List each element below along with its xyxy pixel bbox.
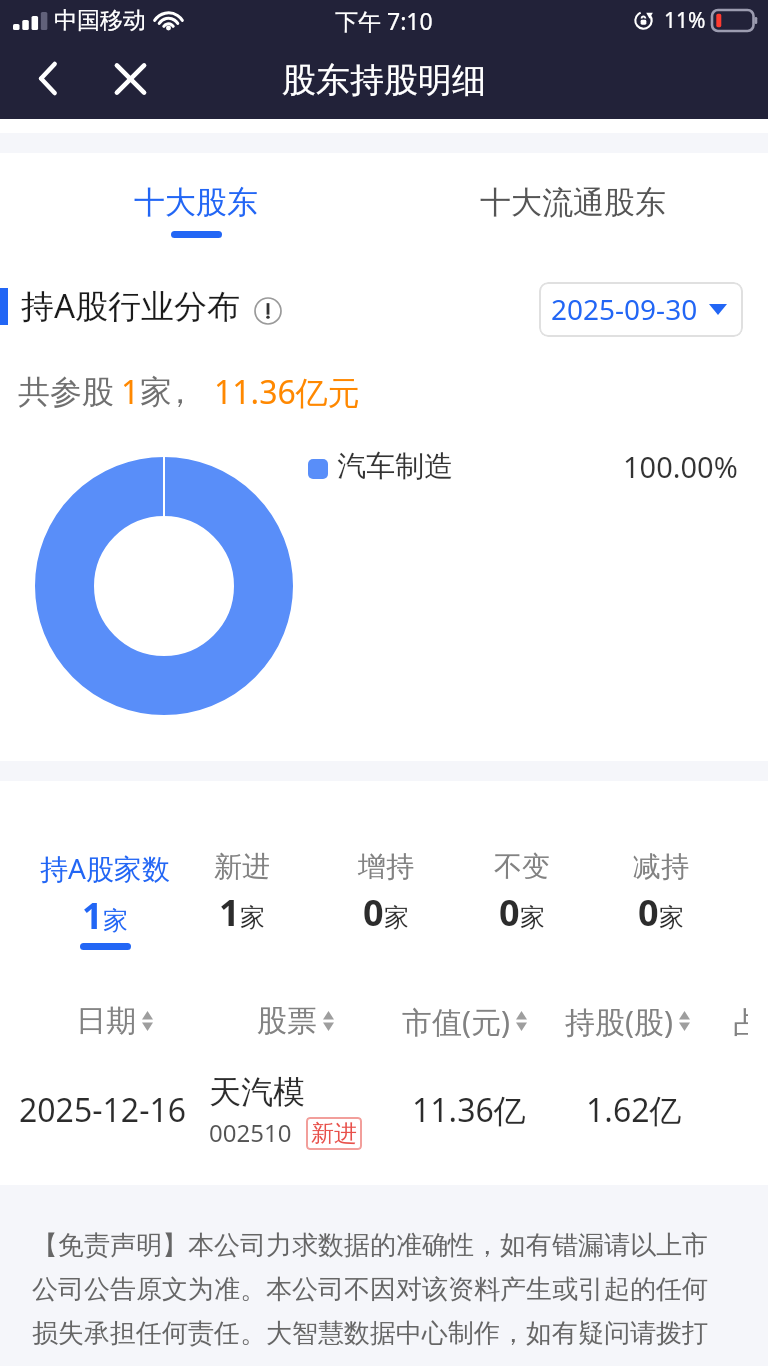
staticText: 占 — [733, 1004, 748, 1042]
staticText: ， — [164, 372, 196, 412]
staticText: 0 — [638, 888, 659, 937]
staticText: 共参股 — [18, 372, 114, 412]
staticText: 2025-12-16 — [19, 1088, 187, 1132]
staticText: 十大股东 — [134, 183, 258, 222]
button[interactable]: 增持 — [296, 845, 476, 960]
staticText: 减持 — [633, 849, 689, 884]
staticText: 十大流通股东 — [480, 183, 666, 222]
button[interactable]: 持股(股) — [557, 998, 697, 1044]
staticText: 股东持股明细 — [282, 59, 486, 102]
staticText: 不变 — [494, 849, 550, 884]
staticText: 增持 — [358, 849, 414, 884]
button[interactable]: 减持 — [571, 845, 751, 960]
staticText: 家 — [240, 902, 265, 933]
staticText: 家 — [103, 905, 128, 936]
button[interactable]: Info — [254, 297, 282, 325]
staticText: 日期 — [76, 1002, 136, 1040]
staticText: 家 — [659, 902, 684, 933]
staticText: 2025-09-30 — [551, 290, 698, 328]
staticText: 天汽模 — [209, 1072, 305, 1112]
button[interactable]: 十大流通股东 — [453, 153, 693, 265]
button[interactable]: 新进 — [152, 845, 332, 960]
button[interactable]: 市值(元) — [394, 998, 534, 1044]
button[interactable]: 股票 — [225, 998, 365, 1044]
button[interactable]: 十大股东 — [76, 153, 316, 265]
staticText: 新进 — [311, 1119, 357, 1148]
staticText: 家 — [520, 902, 545, 933]
staticText: 100.00% — [623, 447, 738, 486]
staticText: 1.62亿 — [586, 1088, 682, 1132]
staticText: 下午 7:10 — [335, 5, 433, 36]
staticText: 11.36亿 — [412, 1088, 526, 1132]
button[interactable]: 2025-12-16 — [0, 1055, 768, 1175]
button[interactable]: 2025-09-30 — [539, 282, 743, 337]
staticText: 【免责声明】本公司力求数据的准确性，如有错漏请以上市公司公告原文为准。本公司不因… — [32, 1229, 732, 1350]
button[interactable]: 日期 — [44, 998, 184, 1044]
staticText: 汽车制造 — [337, 448, 453, 485]
staticText: 0 — [499, 888, 520, 937]
staticText: 0 — [363, 888, 384, 937]
staticText: 11% — [664, 6, 706, 35]
staticText: 新进 — [214, 849, 270, 884]
button[interactable]: Close — [108, 60, 152, 104]
staticText: 股票 — [257, 1002, 317, 1040]
staticText: 持A股行业分布 — [21, 283, 241, 328]
staticText: 1 — [121, 370, 140, 414]
staticText: 家 — [384, 902, 409, 933]
staticText: 持股(股) — [565, 1001, 673, 1042]
staticText: 中国移动 — [54, 6, 146, 35]
staticText: 11.36亿元 — [214, 370, 360, 414]
button[interactable]: 不变 — [432, 845, 612, 960]
staticText: 市值(元) — [402, 1001, 510, 1042]
button[interactable]: 持A股家数 — [15, 845, 195, 960]
staticText: 002510 — [209, 1116, 292, 1149]
staticText: 1 — [82, 891, 103, 940]
staticText: 1 — [219, 888, 240, 937]
button[interactable]: 汽车制造 — [306, 448, 738, 488]
button[interactable]: Back — [25, 60, 69, 104]
staticText: 家 — [140, 372, 172, 412]
staticText: 持A股家数 — [40, 849, 170, 887]
